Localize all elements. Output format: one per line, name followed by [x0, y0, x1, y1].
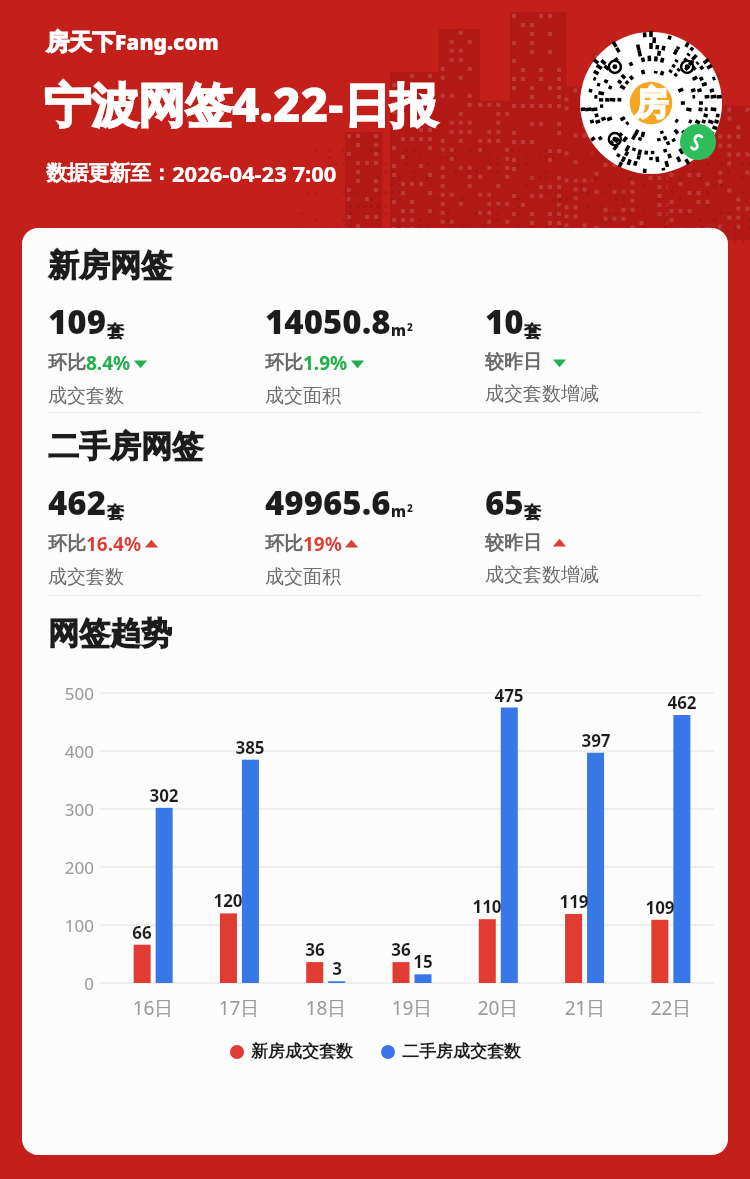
staticText: 16日 — [123, 995, 183, 1021]
staticText: 65 — [485, 480, 524, 525]
staticText: 110 — [465, 895, 509, 918]
staticText: 15 — [401, 950, 445, 973]
staticText: 环比 — [265, 532, 303, 556]
staticText: 2026-04-23 7:00 — [172, 158, 337, 188]
staticText: 成交套数增减 — [485, 563, 599, 587]
button[interactable]: 109 — [48, 299, 265, 408]
staticText: 36 — [293, 938, 337, 961]
staticText: 成交面积 — [265, 384, 341, 408]
staticText: 14050.8 — [265, 299, 391, 344]
staticText: 3 — [315, 957, 359, 980]
button[interactable]: 49965.6 — [265, 480, 485, 589]
staticText: 成交套数 — [48, 384, 124, 408]
staticText: 109 — [48, 299, 107, 344]
staticText: 较昨日 — [485, 350, 542, 374]
staticText: 套 — [107, 321, 124, 342]
staticText: 数据更新至： — [46, 160, 172, 186]
staticText: 500 — [42, 682, 94, 705]
staticText: 21日 — [555, 995, 615, 1021]
staticText: m — [391, 320, 407, 340]
staticText: 100 — [42, 914, 94, 937]
staticText: 新房成交套数 — [251, 1041, 353, 1062]
staticText: 2 — [407, 501, 413, 515]
staticText: 397 — [574, 729, 618, 752]
staticText: 109 — [638, 896, 682, 919]
button[interactable]: 二手房成交套数 — [381, 1041, 521, 1062]
button[interactable]: Scan QR code mini program — [580, 32, 722, 174]
staticText: 较昨日 — [485, 531, 542, 555]
staticText: 宁波网签4.22-日报 — [44, 72, 438, 136]
staticText: 36 — [379, 938, 423, 961]
staticText: 成交面积 — [265, 565, 341, 589]
button[interactable]: 10 — [485, 299, 685, 406]
staticText: 环比 — [265, 351, 303, 375]
staticText: 17日 — [209, 995, 269, 1021]
button[interactable]: 14050.8 — [265, 299, 485, 408]
staticText: m — [391, 501, 407, 521]
staticText: 二手房网签 — [48, 427, 203, 466]
staticText: 18日 — [296, 995, 356, 1021]
staticText: 2 — [407, 320, 413, 334]
staticText: 新房网签 — [48, 246, 172, 285]
staticText: 套 — [524, 502, 541, 523]
staticText: 200 — [42, 856, 94, 879]
staticText: 385 — [228, 736, 272, 759]
staticText: 300 — [42, 798, 94, 821]
staticText: 462 — [660, 691, 704, 714]
staticText: 8.4% — [86, 350, 131, 376]
staticText: 房天下 — [46, 28, 115, 57]
staticText: 环比 — [48, 351, 86, 375]
staticText: 119 — [552, 890, 596, 913]
staticText: 房 — [634, 82, 668, 125]
staticText: 套 — [107, 502, 124, 523]
staticText: 二手房成交套数 — [402, 1041, 521, 1062]
button[interactable]: 462 — [48, 480, 265, 589]
staticText: 10 — [485, 299, 524, 344]
button[interactable]: 新房成交套数 — [230, 1041, 353, 1062]
staticText: Fang.com — [115, 28, 219, 57]
staticText: 49965.6 — [265, 480, 391, 525]
staticText: 环比 — [48, 532, 86, 556]
staticText: 16.4% — [86, 531, 142, 557]
staticText: 成交套数 — [48, 565, 124, 589]
staticText: 套 — [524, 321, 541, 342]
staticText: 400 — [42, 740, 94, 763]
button[interactable]: Fang.com logo — [46, 28, 219, 57]
staticText: 成交套数增减 — [485, 382, 599, 406]
staticText: 网签趋势 — [48, 614, 172, 653]
staticText: 1.9% — [303, 350, 348, 376]
staticText: 302 — [142, 784, 186, 807]
button[interactable]: 65 — [485, 480, 685, 587]
staticText: 475 — [487, 684, 531, 707]
staticText: 20日 — [468, 995, 528, 1021]
staticText: 120 — [206, 889, 250, 912]
staticText: 462 — [48, 480, 107, 525]
staticText: 0 — [42, 972, 94, 995]
staticText: 19% — [303, 531, 342, 557]
staticText: 66 — [120, 921, 164, 944]
staticText: 19日 — [382, 995, 442, 1021]
staticText: 22日 — [641, 995, 701, 1021]
